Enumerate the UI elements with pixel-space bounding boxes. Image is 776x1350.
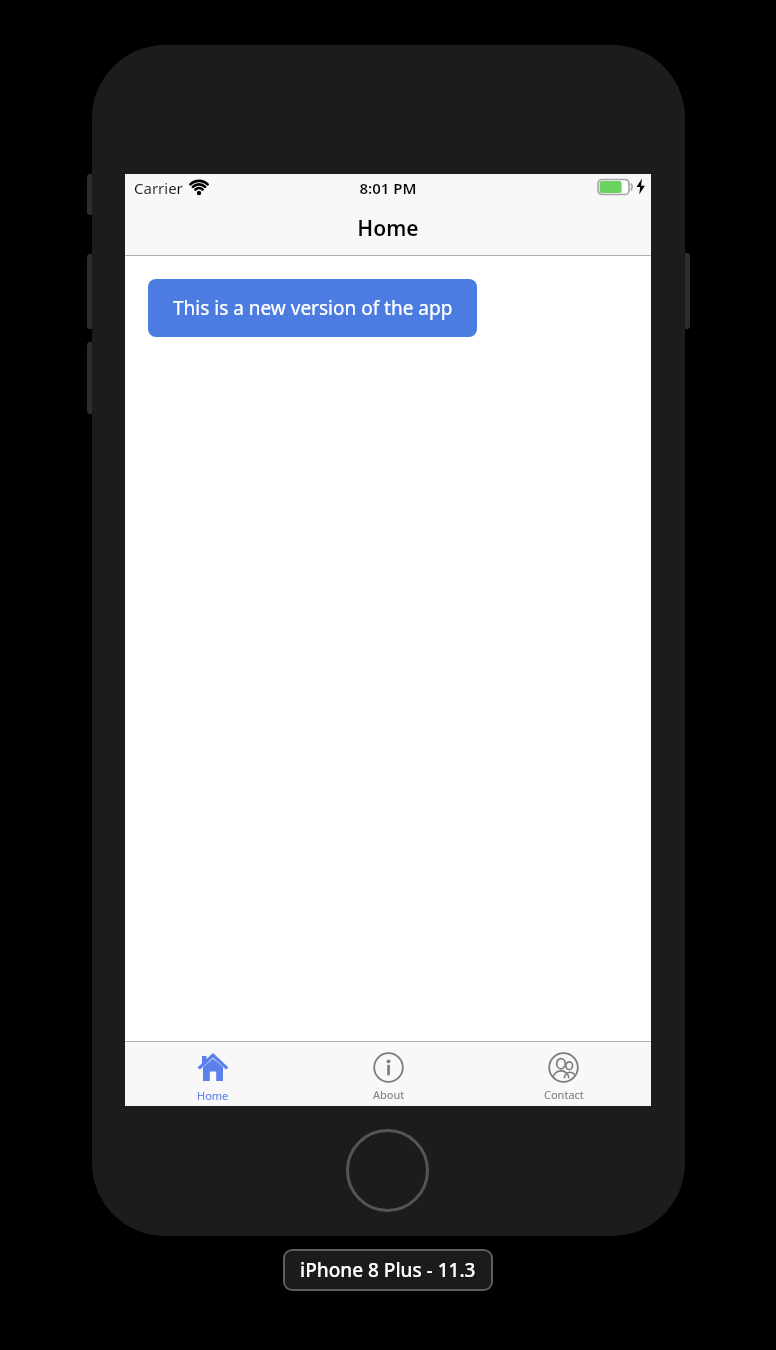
staticText: 8:01 PM	[125, 178, 651, 198]
staticText: About	[373, 1087, 405, 1102]
button[interactable]: This is a new version of the app	[148, 279, 477, 337]
staticText: iPhone 8 Plus - 11.3	[300, 1257, 476, 1283]
staticText: Carrier	[134, 178, 183, 198]
button[interactable]: About	[301, 1041, 476, 1106]
staticText: This is a new version of the app	[173, 295, 453, 321]
staticText: Contact	[544, 1087, 584, 1102]
staticText: Home	[125, 214, 651, 243]
button[interactable]: Contact	[476, 1041, 651, 1106]
staticText: Home	[197, 1088, 229, 1103]
button[interactable]: Home	[125, 1041, 301, 1106]
